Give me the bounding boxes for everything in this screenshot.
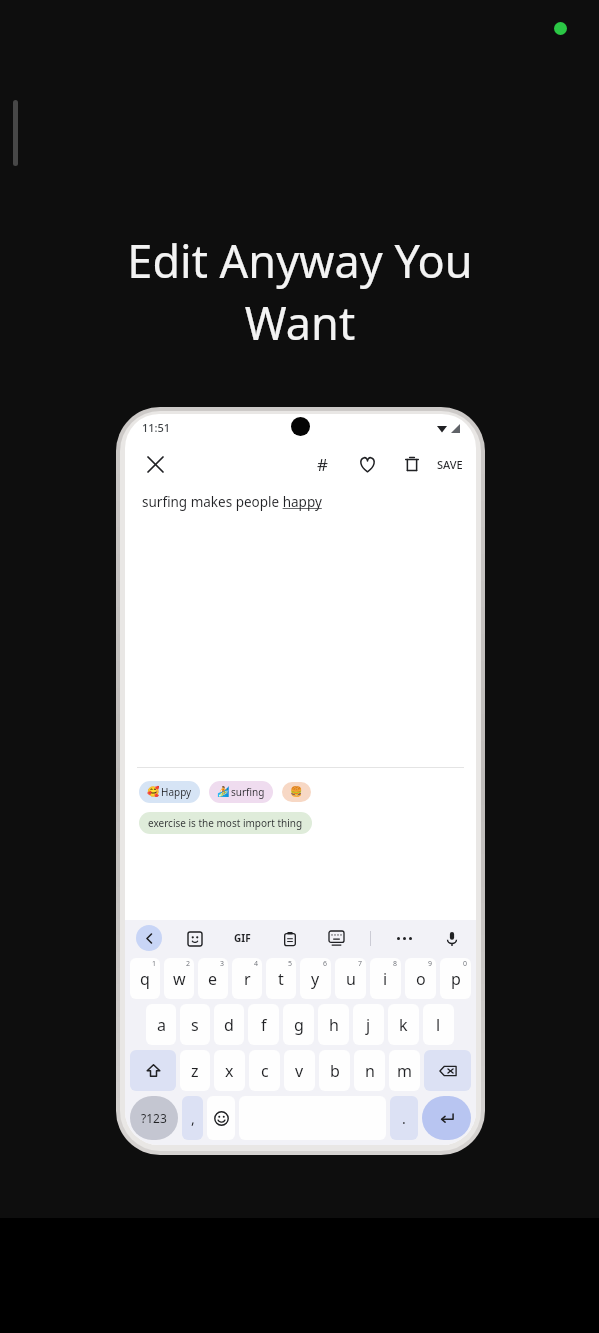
staticText: surfing makes people happy [142, 493, 322, 511]
button[interactable]: f [248, 1004, 279, 1045]
button[interactable]: SAVE [437, 447, 463, 481]
staticText: f [261, 1014, 267, 1036]
staticText: d [224, 1014, 234, 1036]
staticText: a [157, 1014, 166, 1036]
button[interactable]: . [390, 1096, 418, 1140]
button[interactable]: , [182, 1096, 203, 1140]
button[interactable]: v [284, 1050, 315, 1091]
staticText: 8 [393, 959, 398, 969]
button[interactable]: q [130, 958, 160, 999]
staticText: 4 [254, 959, 259, 969]
button[interactable]: Voice input [438, 925, 465, 952]
button[interactable]: c [249, 1050, 280, 1091]
staticText: 🏄 [217, 786, 230, 798]
staticText: n [365, 1060, 375, 1082]
button[interactable]: t [266, 958, 296, 999]
staticText: 6 [323, 959, 328, 969]
staticText: s [191, 1014, 199, 1036]
button[interactable]: exercise is the most import thing [139, 812, 312, 834]
staticText: h [329, 1014, 339, 1036]
staticText: w [173, 968, 186, 990]
staticText: # [317, 453, 328, 476]
button[interactable]: l [423, 1004, 454, 1045]
button[interactable]: w [164, 958, 194, 999]
staticText: o [416, 968, 426, 990]
button[interactable]: i [370, 958, 401, 999]
button[interactable]: z [180, 1050, 210, 1091]
staticText: g [294, 1014, 304, 1036]
staticText: ?123 [141, 1110, 167, 1126]
button[interactable]: x [214, 1050, 245, 1091]
button[interactable]: Close [138, 447, 172, 481]
button[interactable]: y [300, 958, 331, 999]
button[interactable]: Clipboard [276, 925, 303, 952]
button[interactable]: u [335, 958, 366, 999]
button[interactable]: ?123 [130, 1096, 178, 1140]
staticText: c [261, 1060, 269, 1082]
button[interactable]: Backspace [424, 1050, 471, 1091]
button[interactable]: Stickers [181, 925, 208, 952]
button[interactable]: g [283, 1004, 314, 1045]
staticText: t [278, 968, 284, 990]
staticText: u [346, 968, 356, 990]
staticText: k [399, 1014, 408, 1036]
button[interactable]: 🍔 [282, 782, 311, 802]
button[interactable]: Favorite [350, 447, 384, 481]
button[interactable]: More options [391, 925, 418, 952]
staticText: 2 [186, 959, 191, 969]
staticText: 9 [428, 959, 433, 969]
button[interactable]: Enter [422, 1096, 471, 1140]
button[interactable]: j [353, 1004, 384, 1045]
button[interactable]: 🥰 [139, 781, 200, 803]
button[interactable]: Delete [395, 447, 429, 481]
staticText: v [295, 1060, 304, 1082]
staticText: GIF [234, 931, 251, 945]
button[interactable]: b [319, 1050, 350, 1091]
button[interactable]: Shift [130, 1050, 176, 1091]
staticText: . [402, 1109, 406, 1128]
staticText: l [436, 1014, 441, 1036]
staticText: e [208, 968, 218, 990]
button[interactable]: Add hashtag [305, 447, 339, 481]
staticText: Edit Anyway You Want [92, 230, 508, 353]
button[interactable]: m [389, 1050, 420, 1091]
staticText: 7 [358, 959, 363, 969]
staticText: Happy [161, 785, 192, 799]
staticText: x [225, 1060, 234, 1082]
staticText: j [366, 1014, 371, 1036]
button[interactable]: GIF [227, 923, 257, 953]
button[interactable]: o [405, 958, 436, 999]
staticText: surfing [231, 785, 265, 799]
staticText: z [191, 1060, 199, 1082]
button[interactable]: p [440, 958, 471, 999]
staticText: b [330, 1060, 340, 1082]
button[interactable]: r [232, 958, 262, 999]
button[interactable]: n [354, 1050, 385, 1091]
staticText: SAVE [437, 457, 463, 472]
button[interactable]: e [198, 958, 228, 999]
staticText: 0 [463, 959, 468, 969]
staticText: q [140, 968, 150, 990]
button[interactable]: h [318, 1004, 349, 1045]
button[interactable]: Back [136, 925, 162, 951]
staticText: y [311, 968, 320, 990]
button[interactable]: s [180, 1004, 210, 1045]
staticText: 5 [288, 959, 293, 969]
button[interactable]: k [388, 1004, 419, 1045]
staticText: 11:51 [142, 420, 171, 435]
staticText: 3 [220, 959, 225, 969]
button[interactable]: 🏄 [209, 781, 273, 803]
staticText: p [451, 968, 461, 990]
staticText: , [191, 1109, 195, 1128]
button[interactable]: d [214, 1004, 244, 1045]
button[interactable]: Emoji [207, 1096, 235, 1140]
staticText: exercise is the most import thing [148, 816, 303, 830]
button[interactable]: a [146, 1004, 176, 1045]
staticText: r [244, 968, 251, 990]
button[interactable]: Keyboard layout [323, 925, 350, 952]
staticText: i [383, 968, 388, 990]
staticText: 🥰 [147, 786, 160, 798]
staticText: 1 [152, 959, 157, 969]
staticText: m [397, 1060, 412, 1082]
